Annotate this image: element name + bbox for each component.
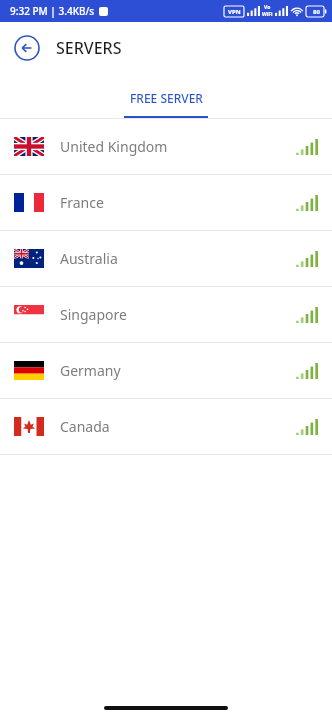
button[interactable]: FREE SERVER: [120, 88, 213, 108]
button[interactable]: Back: [12, 33, 42, 63]
button[interactable]: Canada: [0, 399, 332, 454]
staticText: Vo: [264, 4, 271, 11]
staticText: Australia: [60, 249, 118, 268]
button[interactable]: France: [0, 175, 332, 230]
button[interactable]: Singapore: [0, 287, 332, 342]
staticText: WiFi: [262, 11, 273, 18]
staticText: Singapore: [60, 305, 127, 324]
staticText: 9:32 PM | 3.4KB/s: [10, 4, 95, 18]
staticText: SERVERS: [56, 37, 122, 59]
staticText: 80: [313, 8, 320, 16]
staticText: Canada: [60, 417, 110, 436]
button[interactable]: United Kingdom: [0, 119, 332, 174]
button[interactable]: Germany: [0, 343, 332, 398]
staticText: Germany: [60, 361, 121, 380]
staticText: United Kingdom: [60, 137, 168, 156]
staticText: VPN: [228, 8, 241, 16]
button[interactable]: Australia: [0, 231, 332, 286]
staticText: FREE SERVER: [130, 90, 203, 106]
staticText: France: [60, 193, 104, 212]
